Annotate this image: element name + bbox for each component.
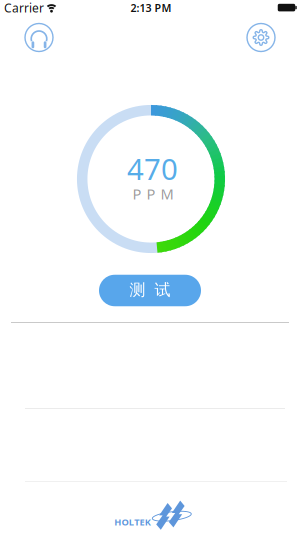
staticText: 测 试 [129, 280, 170, 300]
staticText: 470 [127, 149, 178, 188]
staticText: 2:13 PM [130, 1, 171, 15]
staticText: PPM [132, 184, 173, 203]
staticText: HOLTEK [114, 516, 151, 528]
staticText: Carrier [4, 0, 44, 16]
